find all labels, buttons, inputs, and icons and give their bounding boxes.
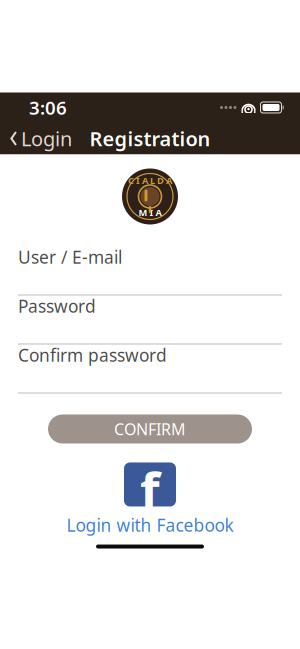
button[interactable]: Login bbox=[0, 119, 72, 158]
staticText: 3:06 bbox=[29, 95, 67, 120]
button[interactable]: f bbox=[66, 462, 233, 536]
staticText: f bbox=[140, 456, 160, 523]
staticText: CONFIRM bbox=[114, 418, 186, 440]
staticText: User / E-mail bbox=[18, 245, 122, 268]
staticText: Login with Facebook bbox=[66, 513, 233, 536]
staticText: Registration bbox=[89, 125, 210, 152]
staticText: Login bbox=[21, 125, 72, 152]
staticText: Confirm password bbox=[18, 343, 167, 366]
staticText: Password bbox=[18, 294, 96, 317]
staticText: M I A bbox=[138, 206, 161, 219]
button[interactable]: CONFIRM bbox=[48, 414, 252, 443]
staticText: C I A L D A bbox=[128, 174, 172, 187]
